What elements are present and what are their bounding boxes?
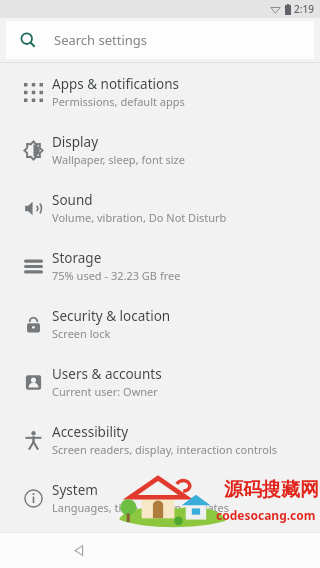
staticText: Apps & notifications [52,75,179,93]
staticText: Display [52,133,99,151]
staticText: Users & accounts [52,365,162,383]
button[interactable]: Storage [0,237,320,295]
button[interactable]: Sound [0,179,320,237]
staticText: 75% used - 32.23 GB free [52,268,181,283]
staticText: Volume, vibration, Do Not Disturb [52,210,227,225]
staticText: Security & location [52,307,171,325]
staticText: Wallpaper, sleep, font size [52,152,185,167]
button[interactable]: Back [66,537,92,563]
staticText: Screen lock [52,326,111,341]
button[interactable]: Display [0,121,320,179]
button[interactable]: Search settings [6,21,314,59]
staticText: Screen readers, display, interaction con… [52,442,278,457]
staticText: System [52,481,98,499]
staticText: codesocang.com [216,507,316,523]
staticText: Search settings [54,31,148,49]
staticText: Current user: Owner [52,384,158,399]
staticText: Languages, time, backup, updates [52,500,230,515]
staticText: 源码搜藏网 [224,478,319,502]
staticText: Accessibility [52,423,129,441]
button[interactable]: Users & accounts [0,353,320,411]
button[interactable]: Accessibility [0,411,320,469]
staticText: Storage [52,249,102,267]
button[interactable]: Security & location [0,295,320,353]
staticText: Permissions, default apps [52,94,185,109]
staticText: Sound [52,191,93,209]
button[interactable]: System [0,469,320,527]
button[interactable]: Apps & notifications [0,63,320,121]
staticText: 2:19 [294,2,314,16]
